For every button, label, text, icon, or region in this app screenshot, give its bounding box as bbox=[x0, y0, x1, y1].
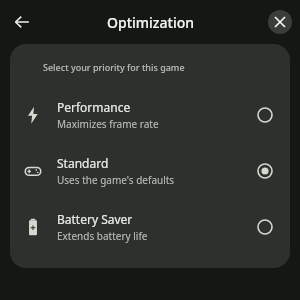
staticText: Battery Saver bbox=[57, 211, 133, 227]
staticText: Performance bbox=[57, 99, 131, 115]
staticText: Uses the game's defaults bbox=[57, 173, 175, 187]
staticText: Optimization bbox=[107, 13, 194, 32]
button[interactable]: Close bbox=[268, 10, 292, 34]
other: Not selected bbox=[254, 104, 276, 126]
button[interactable]: Standard bbox=[10, 143, 290, 199]
button[interactable]: Back bbox=[8, 8, 36, 36]
button[interactable]: Battery Saver bbox=[10, 199, 290, 255]
other: Not selected bbox=[254, 216, 276, 238]
button[interactable]: Performance bbox=[10, 87, 290, 143]
other: Selected bbox=[254, 160, 276, 182]
staticText: Extends battery life bbox=[57, 229, 148, 243]
staticText: Maximizes frame rate bbox=[57, 117, 159, 131]
staticText: Standard bbox=[57, 155, 109, 171]
staticText: Select your priority for this game bbox=[43, 61, 185, 73]
